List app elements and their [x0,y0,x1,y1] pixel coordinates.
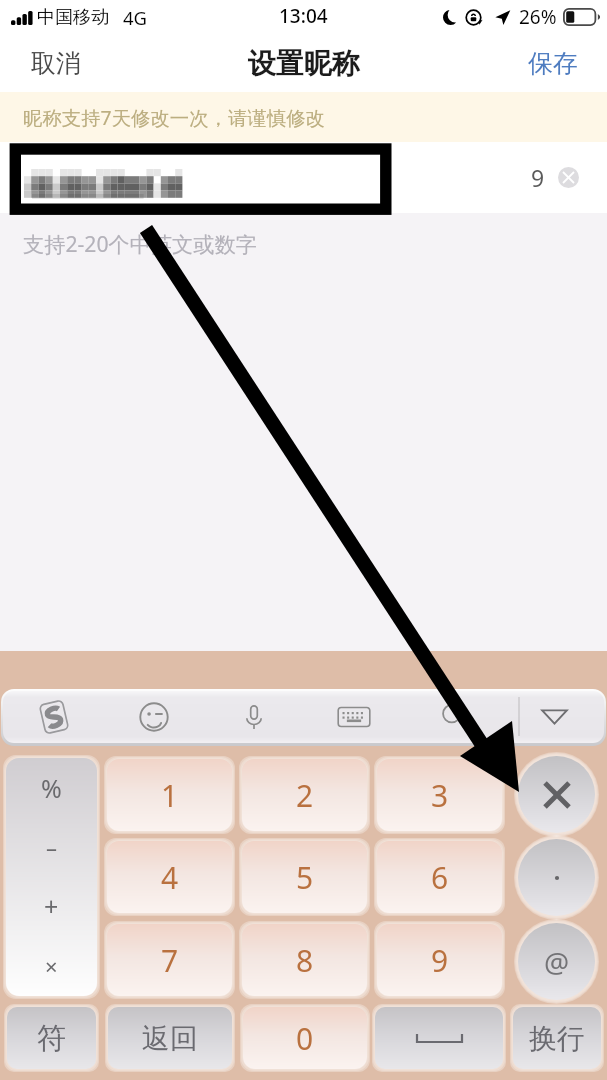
staticText: 3 [431,775,449,816]
button[interactable]: Voice input [204,691,304,743]
button[interactable]: 保存 [504,36,607,91]
staticText: 5 [296,857,314,898]
button[interactable]: Delete [518,756,595,833]
staticText: 返回 [142,1021,198,1056]
staticText: 中国移动 [37,6,109,29]
button[interactable]: Space [375,1007,503,1069]
button[interactable]: Symbols panel [6,758,97,996]
staticText: 昵称支持7天修改一次，请谨慎修改 [23,104,325,130]
button[interactable]: 9 [377,924,502,996]
button[interactable]: Dot [518,839,595,916]
staticText: 4G [123,5,148,30]
staticText: 支持2-20个中英文或数字 [23,229,257,258]
staticText: – [46,832,58,862]
button[interactable]: 4 [107,841,232,913]
button[interactable]: Clear text [558,167,579,188]
staticText: 换行 [529,1021,585,1056]
button[interactable]: Hide keyboard [504,691,604,743]
staticText: @ [544,943,570,981]
staticText: 符 [37,1020,66,1057]
staticText: 9 [431,940,449,981]
button[interactable]: 3 [377,759,502,831]
staticText: 1 [161,775,179,816]
staticText: 设置昵称 [248,46,360,81]
staticText: 取消 [31,48,81,79]
staticText: 6 [431,857,449,898]
button[interactable]: 7 [107,924,232,996]
button[interactable]: 1 [107,759,232,831]
staticText: % [41,771,62,805]
staticText: 4 [161,857,179,898]
button[interactable]: Sogou input method [3,691,104,743]
staticText: 13:04 [279,3,328,29]
staticText: 保存 [528,48,578,79]
staticText: + [44,889,59,923]
button[interactable]: 8 [242,924,367,996]
staticText: 9 [531,162,545,193]
staticText: × [45,951,58,981]
button[interactable]: 2 [242,759,367,831]
button[interactable]: 取消 [0,36,105,91]
staticText: 26% [519,4,557,30]
button[interactable]: 符 [7,1007,96,1069]
staticText: 8 [296,940,314,981]
button[interactable]: 6 [377,841,502,913]
button[interactable]: Keyboard layout [304,691,404,743]
staticText: 2 [296,775,314,816]
button[interactable]: 返回 [108,1007,232,1069]
button[interactable]: 0 [243,1007,367,1069]
button[interactable]: 5 [242,841,367,913]
button[interactable]: At sign [518,923,595,1000]
staticText: 0 [296,1018,314,1059]
staticText: 7 [161,940,179,981]
button[interactable]: Search [404,691,504,743]
button[interactable]: 换行 [513,1007,601,1069]
button[interactable]: Emoji [104,691,204,743]
